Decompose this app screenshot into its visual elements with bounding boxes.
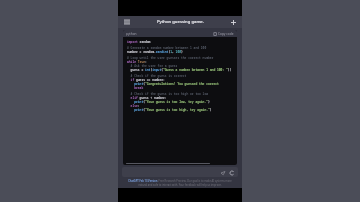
button[interactable]: Regenerate response bbox=[228, 169, 235, 176]
staticText: if guess == number: bbox=[127, 78, 235, 82]
button[interactable]: New chat bbox=[228, 17, 238, 27]
staticText: ChatGPT Feb 13 Version. Free Research Pr… bbox=[124, 179, 236, 186]
staticText: Python guessing game. bbox=[157, 19, 204, 25]
button[interactable]: Send message bbox=[122, 167, 238, 177]
staticText: elif guess < number: bbox=[127, 96, 235, 100]
staticText: guess = int(input("Guess a number betwee… bbox=[127, 68, 235, 72]
staticText: # Check if the guess is correct bbox=[127, 74, 235, 78]
staticText: print("Your guess is too low, try again.… bbox=[127, 100, 235, 104]
staticText: import random bbox=[127, 40, 235, 44]
staticText: while True: bbox=[127, 60, 235, 64]
staticText: # Check if the guess is too high or too … bbox=[127, 92, 235, 96]
staticText: # Generate a random number between 1 and… bbox=[127, 46, 235, 50]
staticText: # Loop until the user guesses the correc… bbox=[127, 56, 235, 60]
staticText: number = random.randint(1, 100) bbox=[127, 50, 235, 54]
staticText: break bbox=[127, 86, 235, 90]
button[interactable]: Send message bbox=[219, 169, 226, 176]
staticText: print("Congratulations! You guessed the … bbox=[127, 82, 235, 86]
staticText: Copy code bbox=[218, 32, 234, 36]
staticText: # Ask the user for a guess bbox=[127, 64, 235, 68]
button[interactable]: Open menu bbox=[122, 17, 132, 27]
staticText: python bbox=[126, 32, 137, 36]
staticText: else: bbox=[127, 104, 235, 108]
button[interactable]: Copy code bbox=[213, 32, 234, 36]
staticText: print("Your guess is too high, try again… bbox=[127, 108, 235, 112]
